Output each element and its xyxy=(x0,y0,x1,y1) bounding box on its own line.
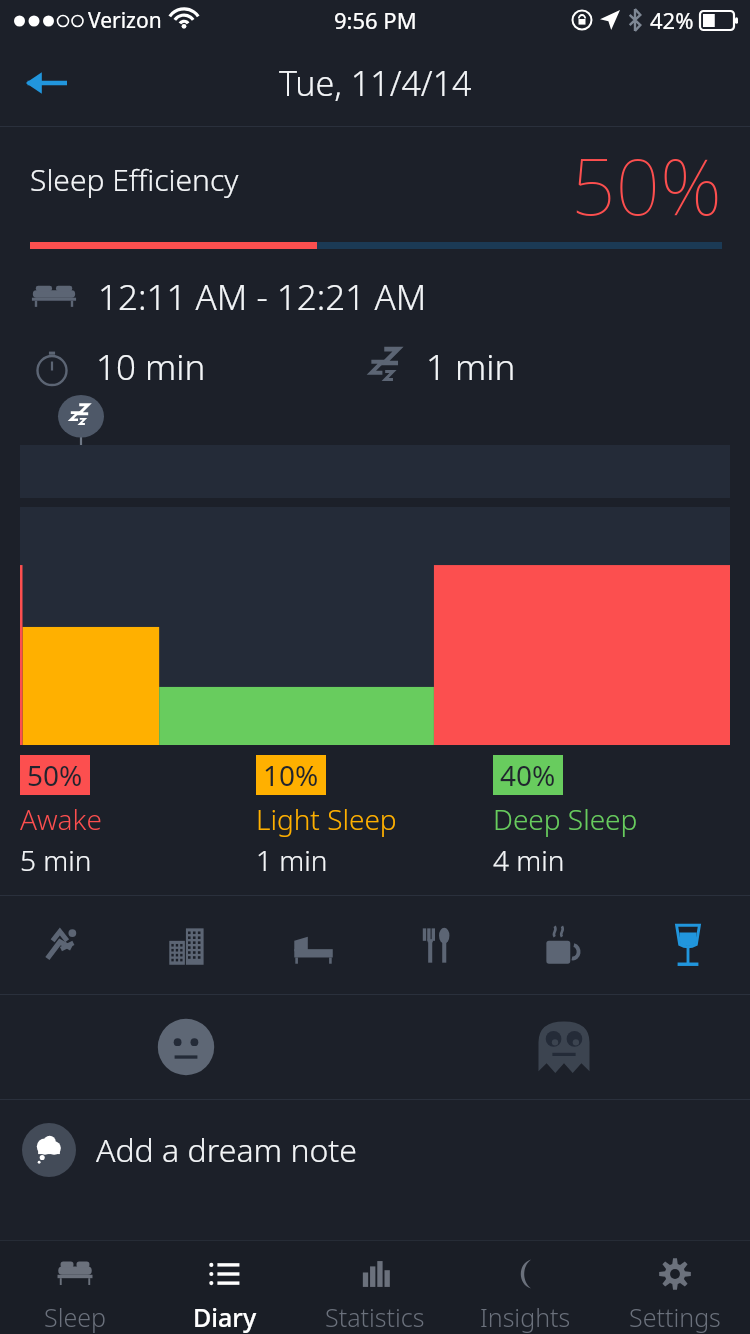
button[interactable]: 10% xyxy=(256,755,493,879)
button[interactable]: Mood neutral xyxy=(150,1011,222,1083)
button[interactable]: Work xyxy=(125,896,250,994)
button[interactable]: 50% xyxy=(20,755,256,879)
button[interactable]: 40% xyxy=(493,755,730,879)
staticText: 42% xyxy=(650,5,694,35)
staticText: 9:56 PM xyxy=(334,5,417,35)
staticText: Tue, 11/4/14 xyxy=(279,60,472,106)
staticText: 1 min xyxy=(256,841,328,879)
button[interactable]: Meal xyxy=(375,896,500,994)
staticText: Add a dream note xyxy=(96,1128,357,1172)
staticText: Light Sleep xyxy=(256,800,397,838)
staticText: 1 min xyxy=(426,343,516,391)
staticText: 5 min xyxy=(20,841,92,879)
staticText: Awake xyxy=(20,800,102,838)
button[interactable]: Coffee xyxy=(500,896,625,994)
button[interactable]: Statistics xyxy=(300,1241,450,1334)
staticText: 50% xyxy=(571,132,722,238)
button[interactable]: Add a dream note xyxy=(0,1100,750,1200)
staticText: 50% xyxy=(27,756,83,794)
button[interactable]: Sleep xyxy=(0,1241,150,1334)
button[interactable]: Back xyxy=(14,51,78,115)
staticText: Verizon xyxy=(88,6,162,35)
staticText: Statistics xyxy=(325,1300,425,1334)
staticText: Sleep Efficiency xyxy=(30,159,239,200)
button[interactable]: Diary xyxy=(150,1241,300,1334)
button[interactable]: Nap xyxy=(250,896,375,994)
staticText: 12:11 AM - 12:21 AM xyxy=(98,273,427,321)
button[interactable]: Exercise xyxy=(0,896,125,994)
staticText: Sleep xyxy=(44,1300,107,1334)
staticText: 10 min xyxy=(96,343,206,391)
button[interactable]: Nightmare xyxy=(528,1011,600,1083)
button[interactable]: Insights xyxy=(450,1241,600,1334)
staticText: 4 min xyxy=(493,841,565,879)
button[interactable]: Alcohol xyxy=(625,896,750,994)
staticText: Settings xyxy=(629,1300,721,1334)
staticText: 40% xyxy=(500,756,556,794)
button[interactable]: Settings xyxy=(600,1241,750,1334)
staticText: Insights xyxy=(480,1300,571,1334)
staticText: Diary xyxy=(193,1300,257,1334)
staticText: Deep Sleep xyxy=(493,800,638,838)
staticText: 10% xyxy=(263,756,319,794)
